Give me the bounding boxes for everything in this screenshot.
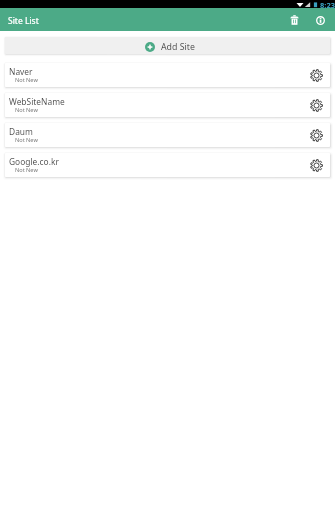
staticText: Add Site <box>161 41 195 53</box>
button[interactable]: Google.co.kr <box>5 153 330 177</box>
staticText: Google.co.kr <box>9 156 59 167</box>
button[interactable]: Delete <box>284 10 304 30</box>
button[interactable]: Add Site <box>5 37 330 54</box>
button[interactable]: Settings <box>308 97 324 113</box>
staticText: Site List <box>8 15 39 27</box>
button[interactable]: Settings <box>308 67 324 83</box>
button[interactable]: WebSiteName <box>5 93 330 117</box>
staticText: Not New <box>15 106 38 114</box>
button[interactable]: Naver <box>5 63 330 87</box>
button[interactable]: Info <box>310 10 330 30</box>
staticText: Daum <box>9 126 33 137</box>
staticText: Not New <box>15 166 38 174</box>
button[interactable]: Settings <box>308 157 324 173</box>
button[interactable]: Settings <box>308 127 324 143</box>
staticText: Not New <box>15 136 38 144</box>
staticText: Not New <box>15 76 38 84</box>
button[interactable]: Daum <box>5 123 330 147</box>
staticText: Naver <box>9 66 33 77</box>
staticText: WebSiteName <box>9 96 65 107</box>
staticText: 8:23 <box>320 0 335 8</box>
